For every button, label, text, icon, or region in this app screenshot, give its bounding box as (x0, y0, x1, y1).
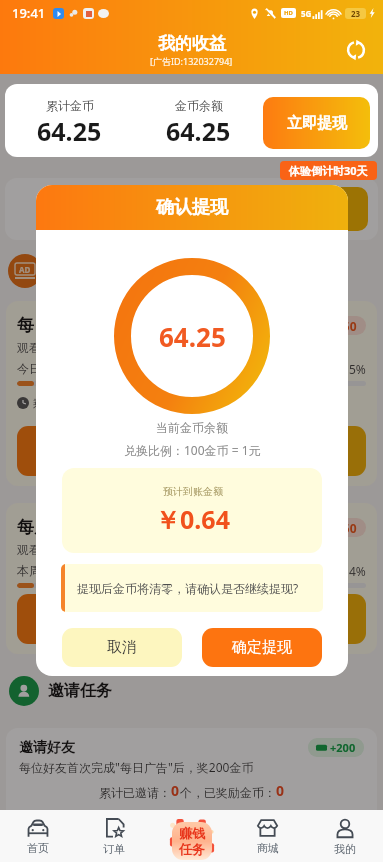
staticText: ，已奖励金币： (192, 785, 276, 800)
staticText: 立即观看 (160, 441, 224, 461)
staticText: 预计到账金额 (163, 485, 223, 498)
button[interactable]: 确定提现 (202, 628, 322, 667)
staticText: 商城 (257, 841, 279, 855)
staticText: 0 (171, 781, 180, 800)
staticText: +200 (330, 740, 356, 755)
staticText: 观看广告赚金币 (17, 340, 101, 355)
staticText: 19:41 (12, 4, 46, 22)
staticText: 立即提现 (287, 114, 347, 133)
staticText: 4% (349, 563, 366, 579)
staticText: +50 (336, 520, 357, 536)
staticText: 23 (351, 8, 361, 19)
staticText: 累计已邀请： (99, 785, 171, 800)
staticText: [广告ID:132032794] (150, 55, 233, 67)
staticText: 观看广告赚金币 (17, 542, 101, 557)
button[interactable]: 商城 (229, 810, 306, 862)
staticText: 0 (276, 781, 285, 800)
staticText: 每周广告 (17, 517, 85, 538)
staticText: 立即观看 (160, 609, 224, 629)
staticText: 邀请好友 (19, 739, 75, 757)
staticText: 体验倒计时30天 (289, 163, 368, 178)
button[interactable]: 首页 (0, 810, 76, 862)
staticText: 我的收益 (158, 33, 226, 54)
staticText: HD (284, 9, 293, 17)
staticText: 提现后金币将清零，请确认是否继续提现? (77, 580, 299, 596)
staticText: +50 (336, 318, 357, 334)
staticText: 今日进度 (17, 361, 65, 376)
staticText: 赚钱 (179, 825, 205, 841)
button[interactable]: 我的 (306, 810, 383, 862)
staticText: 首页 (27, 841, 49, 855)
staticText: 取消 (107, 638, 137, 657)
staticText: AD (19, 264, 31, 275)
staticText: 64.25 (166, 114, 231, 148)
staticText: 5G (301, 8, 312, 19)
staticText: 确认提现 (156, 196, 228, 219)
staticText: 64.25 (159, 319, 226, 354)
staticText: 兑换比例：100金币 = 1元 (124, 442, 261, 458)
staticText: 64.25 (37, 114, 102, 148)
button[interactable]: Refresh (341, 35, 371, 65)
staticText: 累计金币 (46, 98, 94, 113)
staticText: 任务 (179, 841, 205, 857)
staticText: 每位好友首次完成"每日广告"后，奖200金币 (19, 759, 254, 775)
button[interactable]: 订单 (76, 810, 152, 862)
staticText: ￥0.64 (155, 502, 230, 536)
staticText: 我的 (334, 842, 356, 856)
button[interactable]: 取消 (62, 628, 182, 667)
staticText: 邀请任务 (48, 681, 112, 701)
staticText: 每日广告 (17, 315, 85, 336)
staticText: 个 (180, 785, 192, 800)
staticText: 确定提现 (232, 638, 292, 657)
staticText: 本周进度 (17, 563, 65, 578)
staticText: 5% (349, 361, 366, 377)
staticText: 订单 (103, 842, 125, 856)
staticText: 当前金币余额 (156, 420, 228, 435)
button[interactable]: 赚钱任务 (169, 818, 215, 862)
staticText: 剩余 3 次 (33, 395, 83, 411)
staticText: 金币余额 (175, 98, 223, 113)
button[interactable]: 立即提现 (263, 97, 370, 149)
